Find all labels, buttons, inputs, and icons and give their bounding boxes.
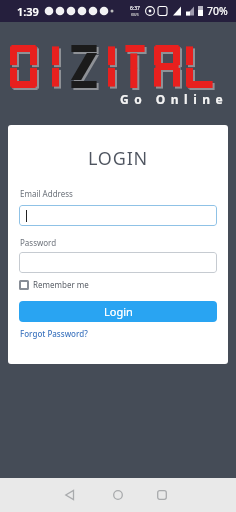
staticText: Remember me bbox=[33, 279, 89, 290]
button[interactable] bbox=[58, 483, 82, 507]
button[interactable] bbox=[19, 205, 217, 226]
staticText: LOGIN bbox=[88, 146, 149, 171]
button[interactable]: Forgot Password? bbox=[20, 328, 88, 339]
staticText: Email Address bbox=[20, 188, 73, 199]
button[interactable] bbox=[150, 483, 174, 507]
button[interactable]: Login bbox=[19, 301, 217, 322]
staticText: Login bbox=[104, 304, 133, 319]
staticText: Go Online bbox=[120, 91, 229, 107]
button[interactable] bbox=[106, 483, 130, 507]
button[interactable]: Remember me bbox=[19, 279, 89, 290]
staticText: KB/S bbox=[131, 12, 139, 17]
staticText: Password bbox=[20, 237, 57, 248]
staticText: 6:37 bbox=[130, 5, 140, 12]
staticText: 1:39 bbox=[17, 4, 39, 19]
staticText: 70% bbox=[207, 4, 228, 18]
button[interactable] bbox=[19, 252, 217, 273]
